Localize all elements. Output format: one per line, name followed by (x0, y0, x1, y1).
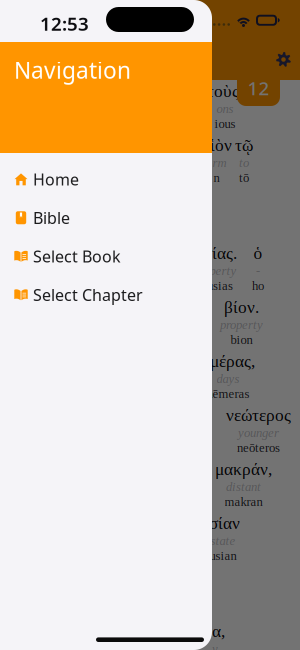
staticText: νεώτερος (226, 405, 291, 425)
staticText: Home (33, 169, 79, 190)
staticText: μακράν, (215, 459, 272, 479)
staticText: hēmeras (206, 387, 249, 401)
staticText: Select Book (33, 246, 121, 267)
staticText: τα, (205, 621, 225, 641)
staticText: Navigation (14, 55, 131, 85)
button[interactable]: 12 (237, 70, 280, 106)
staticText: ious (214, 117, 235, 131)
staticText: Bible (33, 207, 70, 228)
staticText: ho (252, 279, 264, 293)
staticText: estate (204, 534, 235, 548)
staticText: βίον. (224, 297, 259, 317)
staticText: tō (239, 171, 249, 185)
staticText: ἡμέρας, (201, 351, 255, 371)
staticText: erm (206, 156, 226, 170)
staticText: σίας. (203, 243, 237, 263)
staticText: bion (230, 333, 252, 347)
button[interactable]: Select Chapter (0, 275, 212, 314)
staticText: ons (216, 102, 233, 116)
staticText: operty (203, 264, 236, 278)
staticText: makran (224, 495, 262, 509)
staticText: ὁ (253, 243, 262, 263)
staticText: τοὺς. (207, 81, 243, 101)
staticText: younger (238, 426, 279, 440)
staticText: n (213, 171, 219, 185)
staticText: - (256, 264, 260, 278)
staticText: ὐσίαν (200, 513, 240, 533)
staticText: neōteros (237, 441, 280, 455)
staticText: υἱὸν (201, 135, 232, 155)
staticText: days (216, 372, 239, 386)
staticText: Select Chapter (33, 284, 143, 305)
button[interactable]: Select Book (0, 237, 212, 275)
staticText: y (212, 642, 218, 650)
staticText: 12 (247, 76, 269, 100)
staticText: 12:53 (40, 11, 89, 36)
staticText: distant (226, 480, 261, 494)
button[interactable]: Home (0, 160, 212, 198)
staticText: ousian (203, 549, 236, 563)
staticText: property (220, 318, 263, 332)
button[interactable]: Bible (0, 198, 212, 237)
button[interactable]: Settings (276, 0, 300, 67)
staticText: τῷ (235, 135, 253, 155)
staticText: usias (207, 279, 233, 293)
staticText: to (239, 156, 249, 170)
